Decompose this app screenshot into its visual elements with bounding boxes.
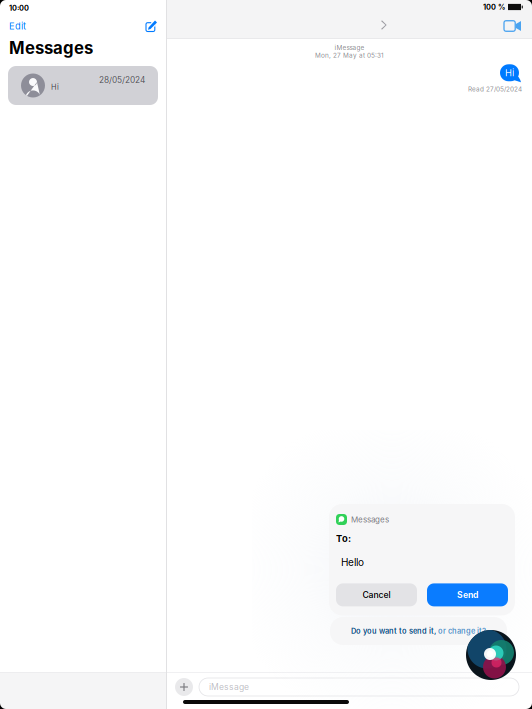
button[interactable]: Cancel bbox=[336, 583, 417, 606]
staticText: 100 % bbox=[483, 3, 505, 11]
staticText: Messages bbox=[9, 38, 93, 58]
staticText: 28/05/2024 bbox=[99, 75, 145, 85]
staticText: or change it? bbox=[436, 626, 486, 635]
staticText: Hi bbox=[505, 67, 514, 78]
staticText: Hello bbox=[341, 556, 364, 568]
button[interactable]: Conversation details bbox=[377, 17, 390, 35]
staticText: To: bbox=[336, 533, 351, 544]
staticText: Messages bbox=[351, 515, 389, 524]
staticText: Hi bbox=[51, 82, 59, 91]
staticText: Mon, 27 May at 05:31 bbox=[315, 51, 384, 59]
button[interactable]: Send bbox=[427, 583, 508, 606]
button[interactable]: Compose bbox=[142, 16, 161, 35]
button[interactable]: Edit bbox=[5, 16, 30, 36]
staticText: 10:00 bbox=[9, 4, 29, 12]
staticText: iMessage bbox=[209, 682, 249, 692]
button[interactable]: Hi bbox=[8, 66, 158, 105]
staticText: iMessage bbox=[334, 44, 364, 51]
staticText: Edit bbox=[9, 20, 26, 32]
button[interactable]: Add attachment bbox=[173, 676, 195, 698]
staticText: Do you want to send it, bbox=[351, 626, 436, 635]
staticText: Read 27/05/2024 bbox=[468, 85, 522, 93]
staticText: Cancel bbox=[362, 590, 390, 600]
staticText: Send bbox=[457, 590, 478, 600]
button[interactable]: FaceTime bbox=[500, 17, 525, 35]
